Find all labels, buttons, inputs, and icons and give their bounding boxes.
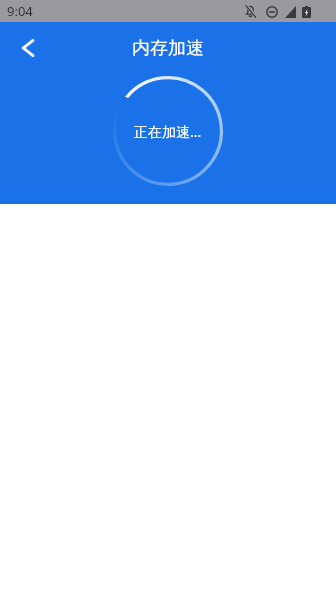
- staticText: 正在加速...: [134, 122, 202, 141]
- staticText: 内存加速: [132, 37, 204, 60]
- staticText: 9:04: [7, 2, 33, 20]
- button[interactable]: Back: [14, 34, 42, 62]
